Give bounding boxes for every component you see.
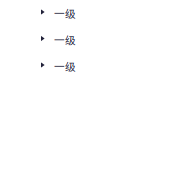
- button[interactable]: 一级: [0, 26, 196, 53]
- staticText: 一级: [54, 58, 76, 74]
- staticText: 一级: [54, 32, 76, 47]
- button[interactable]: 一级: [0, 0, 196, 26]
- staticText: 一级: [54, 5, 76, 21]
- button[interactable]: 一级: [0, 53, 196, 79]
